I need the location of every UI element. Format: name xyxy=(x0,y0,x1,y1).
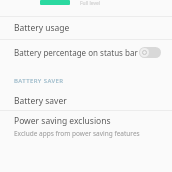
button[interactable]: Battery saver xyxy=(0,92,172,110)
staticText: Exclude apps from power saving features xyxy=(14,129,140,138)
staticText: Power saving exclusions xyxy=(14,115,111,127)
button[interactable]: Battery percentage on status bar xyxy=(0,40,172,63)
button[interactable]: Battery percentage on status bar toggle xyxy=(139,45,161,59)
button[interactable]: Power saving exclusions xyxy=(0,111,172,141)
staticText: Battery percentage on status bar xyxy=(14,47,138,58)
button[interactable]: Full level xyxy=(0,0,172,7)
staticText: Full level xyxy=(80,0,101,7)
staticText: Battery usage xyxy=(14,22,70,34)
staticText: Battery saver xyxy=(14,95,67,107)
button[interactable]: Battery usage xyxy=(0,17,172,39)
staticText: BATTERY SAVER xyxy=(14,77,64,85)
